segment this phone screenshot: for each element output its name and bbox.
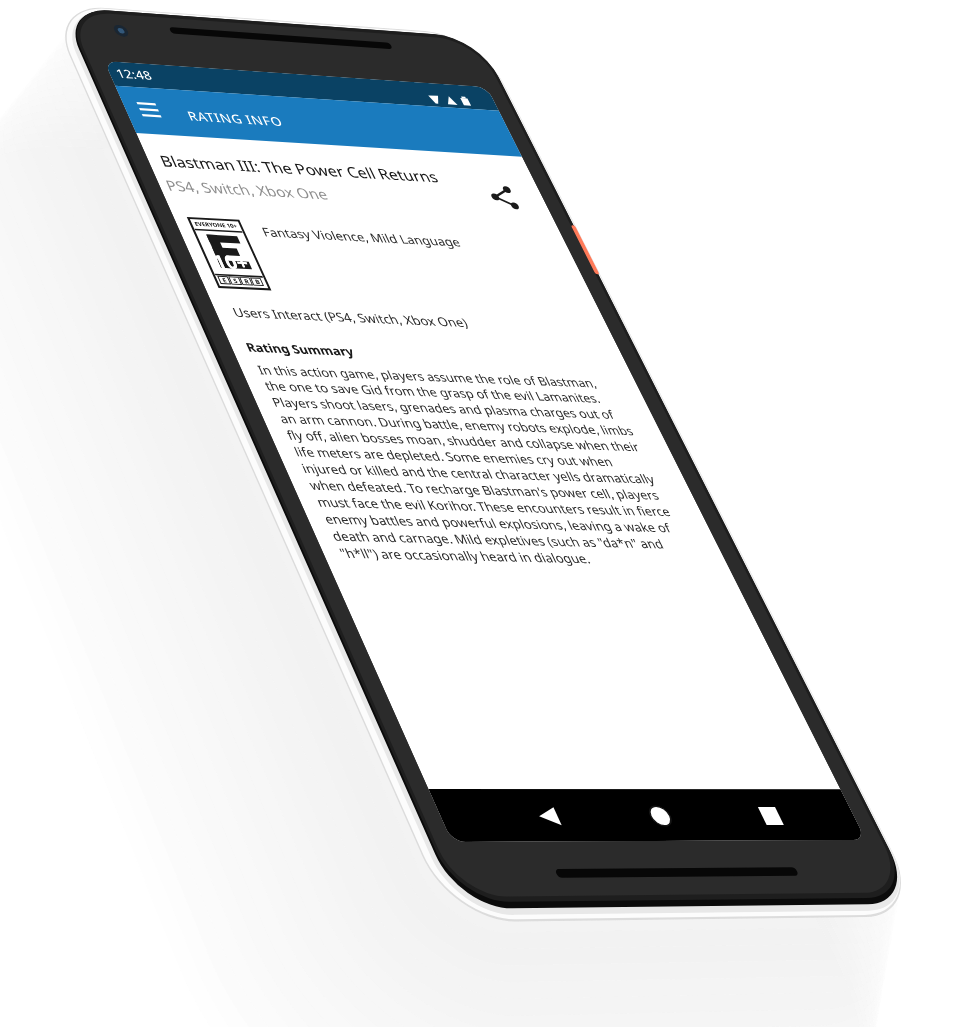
button[interactable]: Recent apps xyxy=(718,790,821,840)
button[interactable]: Home xyxy=(608,790,712,841)
button[interactable]: Share xyxy=(472,173,541,222)
button[interactable]: Open navigation drawer xyxy=(122,92,177,127)
button[interactable]: Back xyxy=(496,790,602,842)
button[interactable]: ESRB rating: Everyone 10+ xyxy=(188,218,270,289)
